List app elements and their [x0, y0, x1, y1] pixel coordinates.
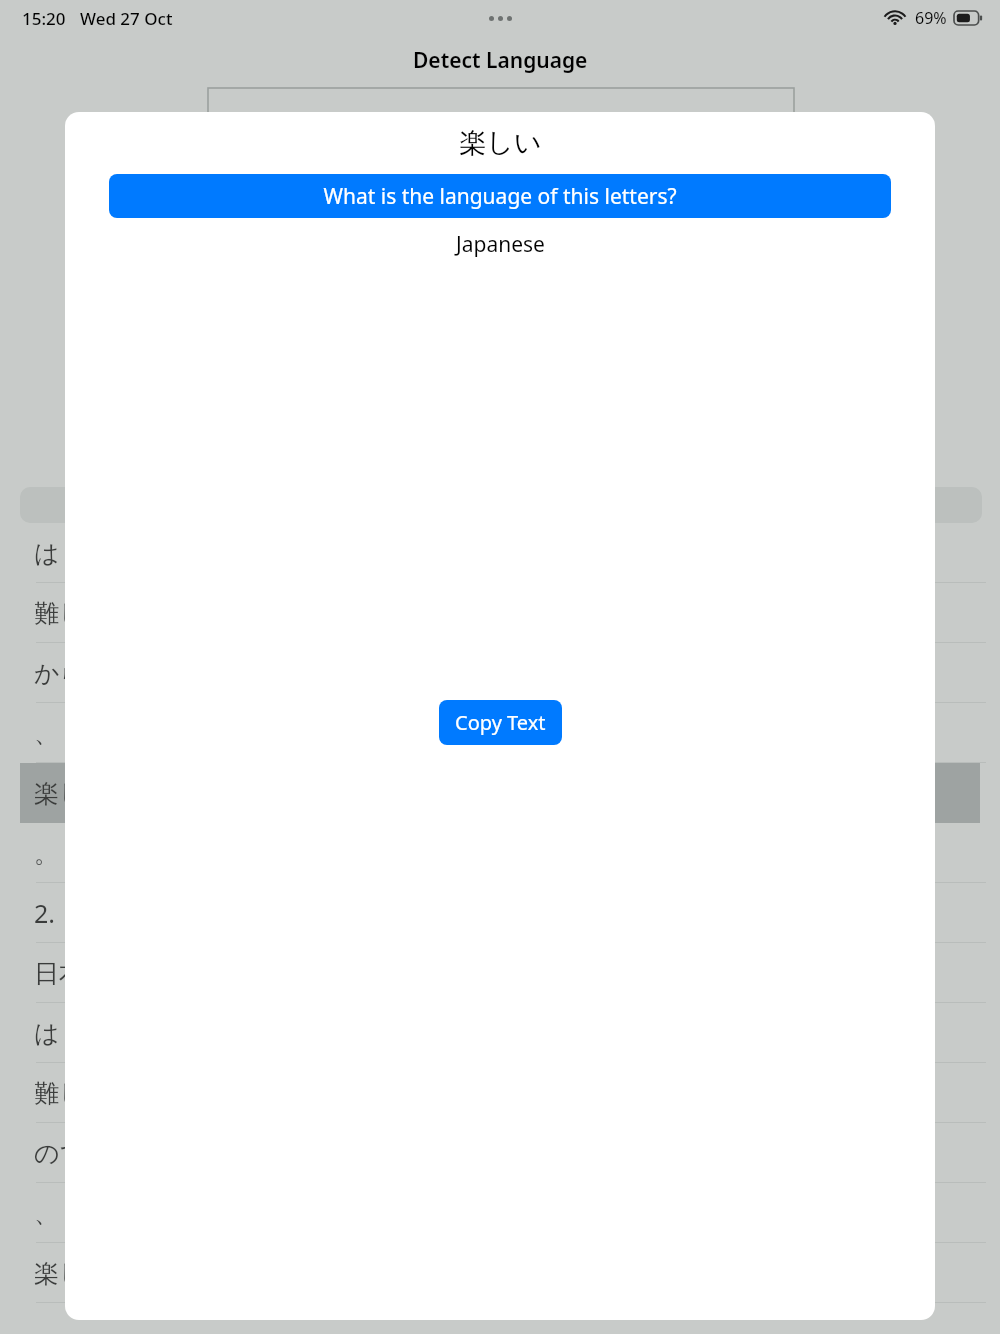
- staticText: 難しい: [34, 1078, 111, 1109]
- button[interactable]: 2.: [0, 883, 1000, 943]
- staticText: 難しい: [34, 598, 111, 629]
- staticText: Copy Text: [455, 709, 546, 736]
- staticText: 15:20: [22, 7, 66, 30]
- staticText: Detect Language: [413, 46, 588, 75]
- button[interactable]: 楽しい: [0, 1243, 1000, 1303]
- button[interactable]: 楽しい: [0, 763, 1000, 823]
- staticText: 楽しい: [459, 126, 542, 160]
- button[interactable]: What is the language of this letters?: [109, 174, 891, 218]
- button[interactable]: 、: [0, 1183, 1000, 1243]
- button[interactable]: は: [0, 523, 1000, 583]
- staticText: 。: [34, 838, 59, 869]
- staticText: ので: [34, 1138, 86, 1169]
- staticText: は: [34, 1018, 60, 1049]
- button[interactable]: は: [0, 1003, 1000, 1063]
- staticText: 楽しい: [34, 1258, 111, 1289]
- button[interactable]: から: [0, 643, 1000, 703]
- staticText: Wed 27 Oct: [80, 7, 173, 30]
- staticText: は: [34, 538, 60, 569]
- staticText: から: [34, 658, 86, 689]
- other: Wi-Fi: [884, 10, 906, 26]
- staticText: 69%: [915, 7, 947, 29]
- staticText: 楽しい: [34, 778, 111, 809]
- staticText: 、: [34, 1198, 59, 1229]
- staticText: What is the language of this letters?: [323, 182, 677, 211]
- button[interactable]: ので: [0, 1123, 1000, 1183]
- button[interactable]: 、: [0, 703, 1000, 763]
- other: Battery: [954, 11, 982, 25]
- staticText: 日本語: [34, 958, 109, 989]
- button[interactable]: 。: [0, 1303, 1000, 1334]
- button[interactable]: [20, 487, 982, 523]
- staticText: 、: [34, 718, 59, 749]
- button[interactable]: 。: [0, 823, 1000, 883]
- button[interactable]: 難しい: [0, 583, 1000, 643]
- button[interactable]: 日本語: [0, 943, 1000, 1003]
- staticText: Japanese: [456, 230, 545, 259]
- button[interactable]: 難しい: [0, 1063, 1000, 1123]
- staticText: 2.: [34, 896, 56, 930]
- button[interactable]: Copy Text: [439, 700, 562, 745]
